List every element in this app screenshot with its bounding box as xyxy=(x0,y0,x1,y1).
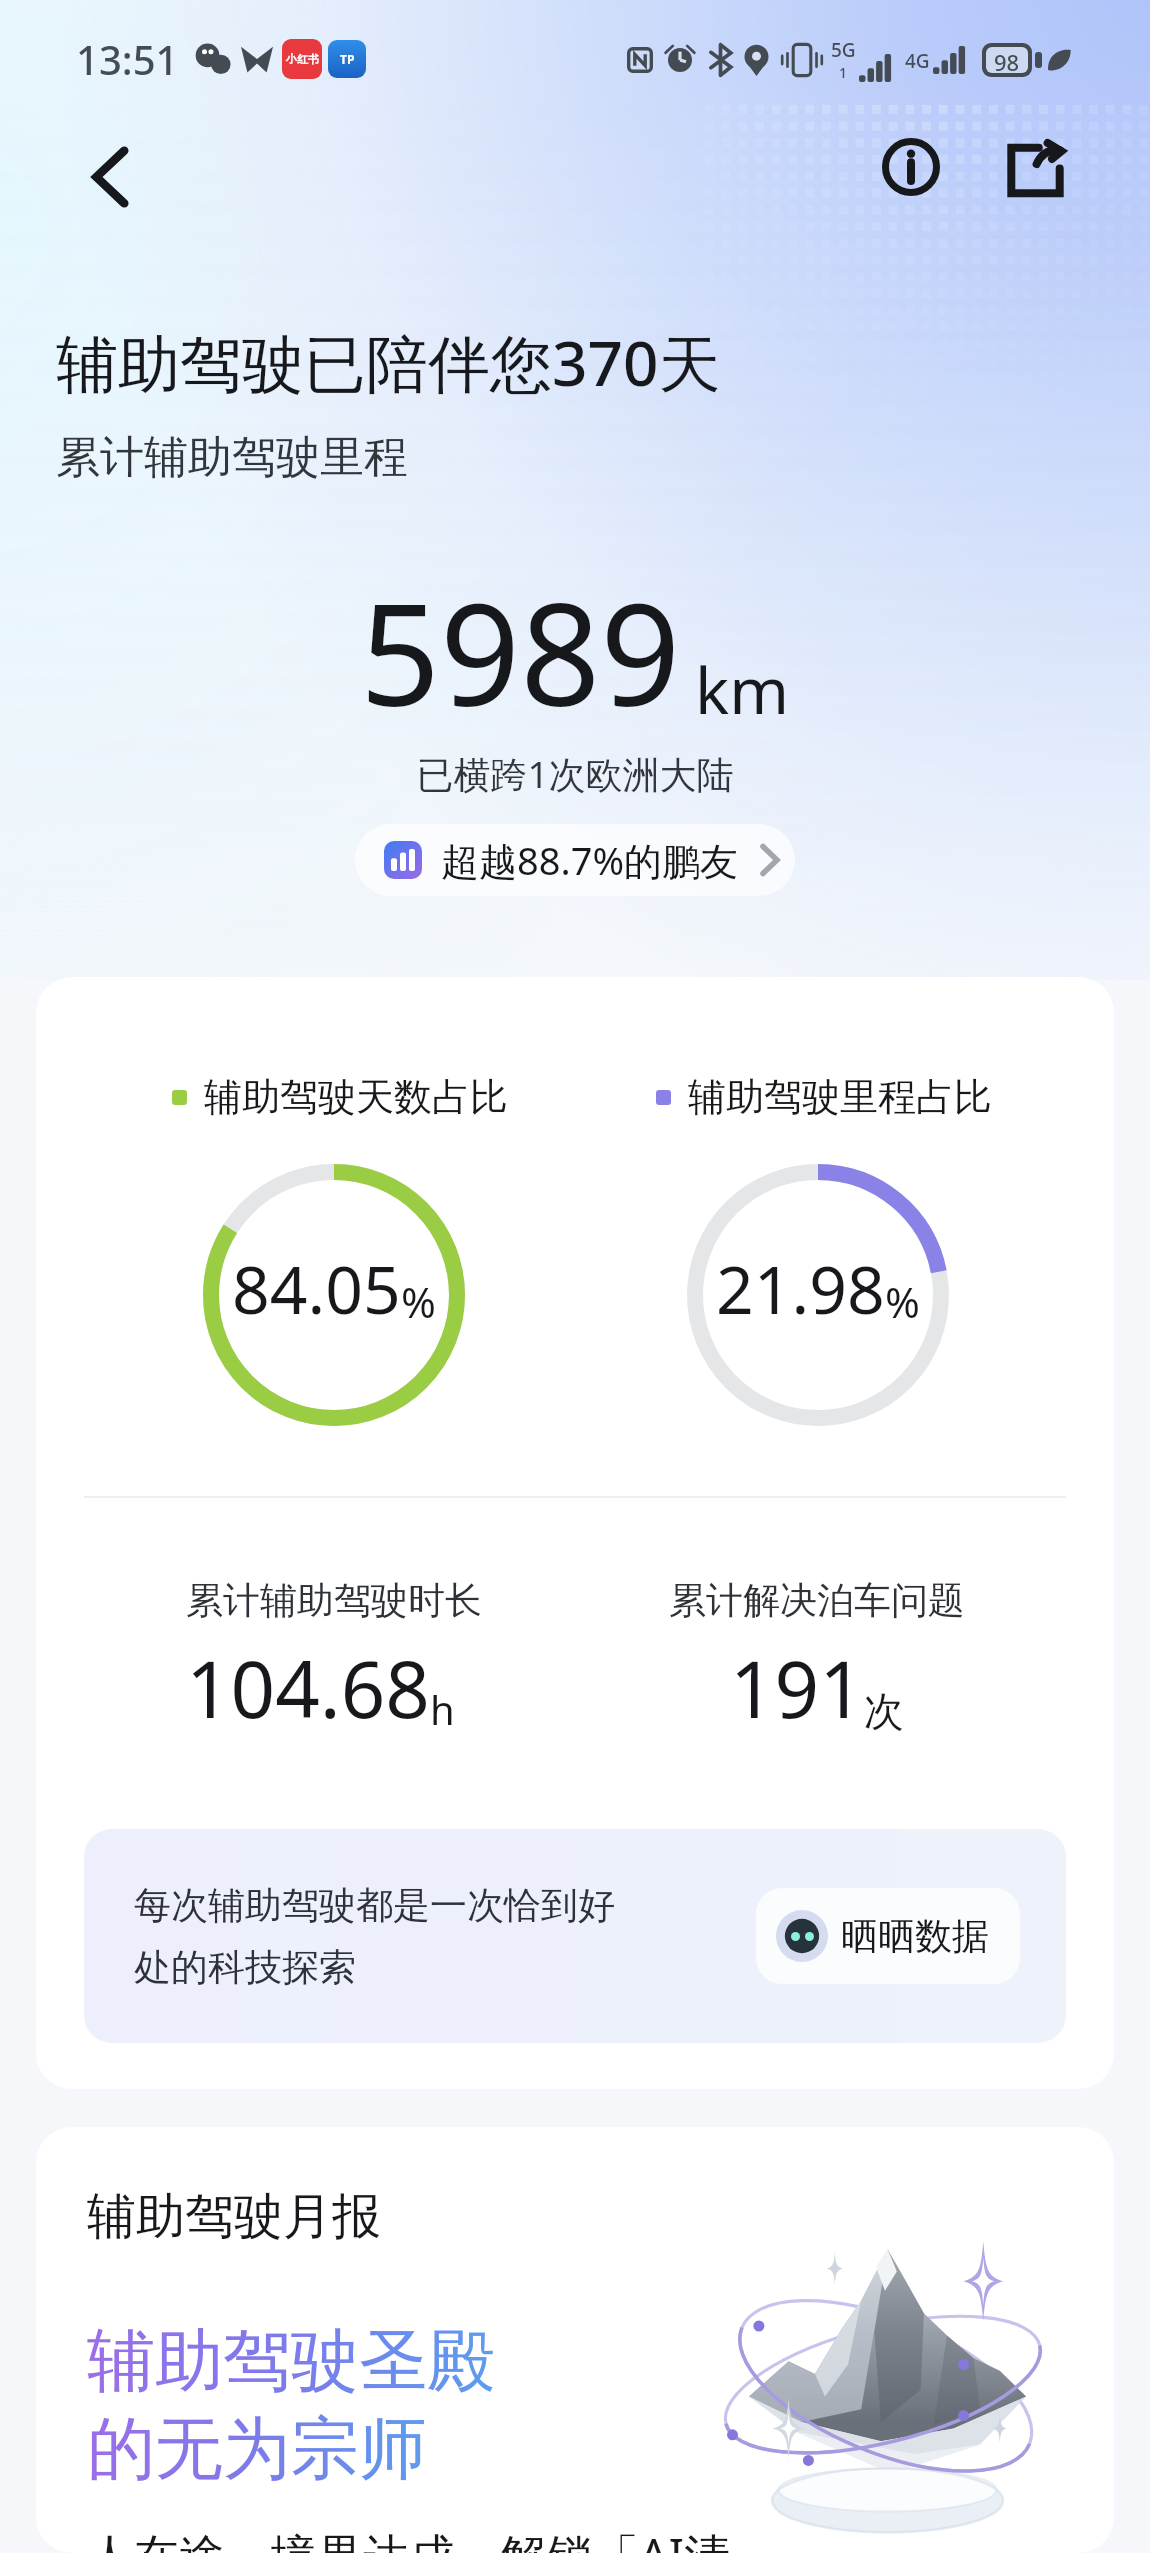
staticText: 4G xyxy=(905,48,930,74)
staticText: 104.68 xyxy=(186,1635,430,1741)
staticText: 累计辅助驾驶时长 xyxy=(186,1577,482,1624)
staticText: 辅助驾驶已陪伴您370天 xyxy=(56,320,721,405)
staticText: 辅助驾驶月报 xyxy=(87,2186,381,2248)
staticText: % xyxy=(401,1273,436,1330)
staticText: 191 xyxy=(730,1635,864,1741)
staticText: 每次辅助驾驶都是一次恰到好 xyxy=(134,1882,615,1929)
staticText: 超越88.7%的鹏友 xyxy=(441,834,738,886)
staticText: 13:51 xyxy=(76,32,179,86)
staticText: 累计辅助驾驶里程 xyxy=(56,430,408,485)
button[interactable]: Info xyxy=(863,119,959,215)
staticText: 辅助驾驶天数占比 xyxy=(204,1073,508,1121)
staticText: 5989 xyxy=(360,556,681,747)
staticText: 的无为宗师 xyxy=(87,2407,427,2493)
staticText: 次 xyxy=(864,1686,904,1736)
staticText: 人在途，境界达成，解锁「AI清 xyxy=(87,2523,730,2553)
button[interactable]: Back xyxy=(66,133,154,221)
button[interactable]: 超越88.7%的鹏友 xyxy=(355,824,795,896)
staticText: 辅助驾驶里程占比 xyxy=(688,1073,992,1121)
staticText: 84.05 xyxy=(232,1243,401,1333)
staticText: 处的科技探索 xyxy=(134,1944,356,1991)
staticText: km xyxy=(695,646,790,733)
staticText: 98 xyxy=(994,47,1020,73)
button[interactable]: 晒晒数据 xyxy=(756,1888,1020,1984)
staticText: 5G xyxy=(831,37,856,63)
staticText: 辅助驾驶圣殿 xyxy=(87,2319,495,2405)
staticText: 已横跨1次欧洲大陆 xyxy=(0,748,1150,799)
button[interactable]: Share xyxy=(987,121,1083,217)
staticText: % xyxy=(885,1273,920,1330)
staticText: 累计解决泊车问题 xyxy=(669,1577,965,1624)
staticText: h xyxy=(430,1682,455,1736)
staticText: 小红书 xyxy=(286,52,319,66)
staticText: 晒晒数据 xyxy=(841,1913,989,1960)
button[interactable]: 辅助驾驶月报 xyxy=(36,2127,1114,2553)
staticText: 1 xyxy=(839,63,848,82)
staticText: TP xyxy=(340,51,355,67)
staticText: 21.98 xyxy=(716,1243,885,1333)
